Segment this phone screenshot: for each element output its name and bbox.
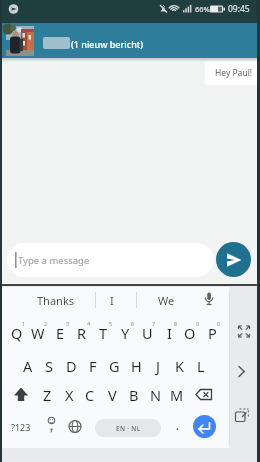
staticText: Type a message xyxy=(18,254,90,267)
staticText: 6 xyxy=(131,320,135,327)
button[interactable]: Z xyxy=(36,381,58,409)
staticText: 0 xyxy=(217,320,221,327)
staticText: F xyxy=(89,356,97,376)
staticText: EN · NL xyxy=(116,424,141,433)
staticText: . xyxy=(176,419,179,433)
button[interactable]: H xyxy=(125,352,147,380)
button[interactable] xyxy=(14,289,98,311)
button[interactable]: B xyxy=(123,381,145,409)
staticText: Z xyxy=(43,385,52,405)
button[interactable]: C xyxy=(79,381,101,409)
button[interactable]: T xyxy=(92,319,114,347)
button[interactable] xyxy=(140,289,192,311)
staticText: T xyxy=(99,323,108,343)
staticText: X xyxy=(65,385,74,405)
button[interactable]: S xyxy=(38,352,60,380)
staticText: Hey Paul! xyxy=(215,67,253,79)
staticText: H xyxy=(131,356,142,376)
staticText: S xyxy=(45,356,53,376)
button[interactable] xyxy=(41,414,62,439)
button[interactable]: G xyxy=(103,352,125,380)
staticText: J xyxy=(156,356,160,376)
button[interactable]: U xyxy=(136,319,158,347)
button[interactable]: K xyxy=(168,352,190,380)
button[interactable] xyxy=(232,405,254,428)
staticText: G xyxy=(109,356,120,376)
button[interactable] xyxy=(8,382,34,407)
staticText: 5 xyxy=(109,320,113,327)
staticText: O xyxy=(184,323,196,343)
button[interactable]: F xyxy=(82,352,104,380)
staticText: N xyxy=(150,385,162,405)
staticText: Y xyxy=(121,323,130,343)
staticText: V xyxy=(108,385,117,405)
staticText: W xyxy=(31,323,45,343)
staticText: U xyxy=(142,323,153,343)
button[interactable] xyxy=(232,360,252,383)
staticText: Q xyxy=(11,323,23,343)
staticText: K xyxy=(175,356,184,376)
staticText: R xyxy=(77,323,87,343)
button[interactable] xyxy=(98,289,136,311)
staticText: 3 xyxy=(66,320,70,327)
button[interactable]: A xyxy=(17,352,39,380)
button[interactable] xyxy=(95,419,161,437)
button[interactable]: I xyxy=(158,319,180,347)
button[interactable]: O xyxy=(179,319,201,347)
button[interactable]: Q xyxy=(6,319,28,347)
staticText: 1 xyxy=(22,320,26,327)
button[interactable]: Y xyxy=(114,319,136,347)
staticText: 2 xyxy=(44,320,48,327)
button[interactable]: W xyxy=(27,319,49,347)
button[interactable] xyxy=(193,382,219,407)
staticText: We xyxy=(158,293,175,308)
button[interactable] xyxy=(166,414,188,439)
button[interactable]: J xyxy=(147,352,169,380)
button[interactable]: M xyxy=(166,381,188,409)
button[interactable]: E xyxy=(49,319,71,347)
button[interactable] xyxy=(216,242,251,277)
staticText: 09:45 xyxy=(228,3,250,15)
button[interactable]: L xyxy=(190,352,212,380)
staticText: I xyxy=(167,323,172,343)
staticText: M xyxy=(170,385,184,405)
button[interactable]: X xyxy=(58,381,80,409)
button[interactable]: R xyxy=(71,319,93,347)
staticText: 8 xyxy=(174,320,178,327)
staticText: L xyxy=(197,356,205,376)
button[interactable]: P xyxy=(201,319,223,347)
staticText: D xyxy=(66,356,77,376)
staticText: E xyxy=(56,323,65,343)
button[interactable] xyxy=(7,414,34,439)
staticText: B xyxy=(129,385,139,405)
button[interactable] xyxy=(64,414,86,439)
staticText: 66% xyxy=(195,4,210,14)
button[interactable] xyxy=(0,23,260,58)
staticText: Thanks xyxy=(37,293,75,308)
button[interactable] xyxy=(232,320,256,344)
staticText: I xyxy=(110,293,114,308)
button[interactable] xyxy=(198,289,220,311)
staticText: P xyxy=(208,323,217,343)
staticText: 4 xyxy=(87,320,91,327)
staticText: (1 nieuw bericht) xyxy=(71,38,144,50)
button[interactable]: V xyxy=(101,381,123,409)
staticText: A xyxy=(23,356,33,376)
staticText: ?123 xyxy=(11,421,31,433)
button[interactable] xyxy=(193,415,216,438)
staticText: 7 xyxy=(152,320,156,327)
button[interactable] xyxy=(7,243,214,277)
button[interactable]: N xyxy=(145,381,167,409)
button[interactable]: D xyxy=(60,352,82,380)
staticText: C xyxy=(85,385,95,405)
staticText: 9 xyxy=(196,320,200,327)
